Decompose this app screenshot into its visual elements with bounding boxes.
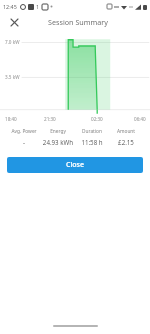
staticText: 02:30 — [91, 116, 103, 122]
staticText: 12:45 — [3, 3, 17, 10]
staticText: 24.93 kWh — [41, 138, 75, 146]
staticText: £2.15 — [109, 138, 143, 146]
staticText: Energy — [41, 128, 75, 135]
staticText: - — [7, 138, 41, 146]
staticText: 3.5 kW — [5, 74, 20, 80]
staticText: Close — [66, 160, 85, 170]
button[interactable]: Close — [7, 157, 143, 173]
staticText: Avg. Power — [7, 128, 41, 135]
button[interactable]: Close — [7, 15, 21, 29]
staticText: Session Summary — [48, 17, 108, 27]
staticText: 18:40 — [5, 116, 17, 122]
staticText: 1 — [36, 3, 40, 10]
staticText: Duration — [75, 128, 109, 135]
staticText: 11:58 h — [75, 138, 109, 146]
staticText: 21:30 — [44, 116, 56, 122]
staticText: Amount — [109, 128, 143, 135]
staticText: 06:40 — [134, 116, 146, 122]
staticText: 7.0 kW — [5, 39, 20, 45]
